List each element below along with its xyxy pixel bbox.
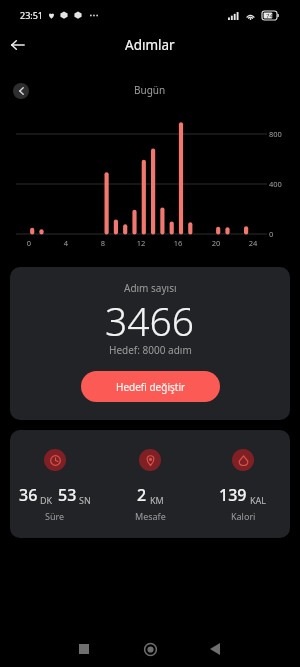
staticText: 36 — [19, 484, 38, 506]
staticText: KAL — [250, 494, 267, 506]
staticText: 74 — [266, 12, 273, 20]
staticText: 23:51 — [20, 9, 44, 21]
staticText: 800 — [269, 129, 282, 139]
button[interactable]: Hedefi değiştir — [81, 371, 220, 402]
staticText: SN — [79, 494, 91, 506]
staticText: 8 — [93, 238, 113, 248]
staticText: 0 — [269, 229, 274, 239]
staticText: Hedef: 8000 adım — [109, 343, 192, 357]
staticText: Bugün — [134, 83, 166, 97]
staticText: 12 — [131, 238, 151, 248]
staticText: 2 — [137, 484, 147, 506]
button[interactable]: Recents — [66, 631, 102, 667]
staticText: KM — [150, 494, 164, 506]
staticText: 16 — [168, 238, 188, 248]
staticText: Kalori — [231, 510, 256, 522]
staticText: Mesafe — [135, 510, 166, 522]
staticText: 4 — [56, 238, 76, 248]
staticText: 20 — [206, 238, 226, 248]
button[interactable]: Home — [132, 631, 168, 667]
staticText: 24 — [243, 238, 263, 248]
staticText: Hedefi değiştir — [116, 380, 186, 394]
staticText: 400 — [269, 179, 282, 189]
staticText: Süre — [45, 510, 65, 522]
staticText: Adım sayısı — [124, 281, 177, 295]
staticText: 139 — [219, 484, 247, 506]
staticText: 3466 — [105, 294, 195, 347]
staticText: DK — [40, 494, 53, 506]
button[interactable]: Previous day — [13, 83, 29, 99]
staticText: 0 — [19, 238, 39, 248]
staticText: Adımlar — [125, 36, 175, 54]
button[interactable]: Back — [2, 29, 34, 61]
staticText: 53 — [58, 484, 77, 506]
button[interactable]: Back — [197, 631, 233, 667]
